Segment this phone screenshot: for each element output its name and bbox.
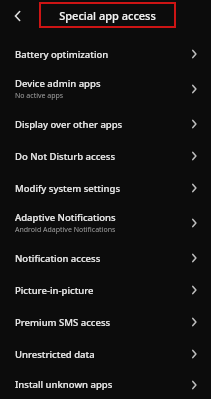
staticText: Notification access bbox=[15, 252, 101, 265]
button[interactable]: Premium SMS access bbox=[0, 306, 211, 338]
staticText: Android Adaptive Notifications bbox=[15, 225, 116, 235]
staticText: No active apps bbox=[15, 91, 64, 101]
staticText: Install unknown apps bbox=[15, 378, 113, 391]
button[interactable]: Device admin apps bbox=[0, 70, 211, 108]
button[interactable]: Install unknown apps bbox=[0, 370, 211, 399]
staticText: Special app access bbox=[59, 8, 156, 23]
staticText: Picture-in-picture bbox=[15, 284, 94, 297]
staticText: Modify system settings bbox=[15, 182, 121, 195]
button[interactable]: Display over other apps bbox=[0, 108, 211, 140]
staticText: Display over other apps bbox=[15, 118, 123, 131]
button[interactable]: Unrestricted data bbox=[0, 338, 211, 370]
staticText: Battery optimization bbox=[15, 48, 109, 61]
staticText: Premium SMS access bbox=[15, 316, 111, 329]
button[interactable]: Picture-in-picture bbox=[0, 274, 211, 306]
staticText: Adaptive Notifications bbox=[15, 211, 116, 224]
staticText: Unrestricted data bbox=[15, 348, 95, 361]
staticText: Device admin apps bbox=[15, 77, 101, 90]
button[interactable]: Modify system settings bbox=[0, 172, 211, 204]
button[interactable]: Back bbox=[2, 0, 34, 31]
staticText: Do Not Disturb access bbox=[15, 150, 116, 163]
button[interactable]: Do Not Disturb access bbox=[0, 140, 211, 172]
button[interactable]: Notification access bbox=[0, 242, 211, 274]
button[interactable]: Battery optimization bbox=[0, 38, 211, 70]
button[interactable]: Adaptive Notifications bbox=[0, 204, 211, 242]
